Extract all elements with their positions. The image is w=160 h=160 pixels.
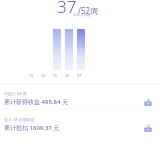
staticText: 34 [37,73,49,78]
staticText: 累计抵扣 1609.37 元 [4,124,60,132]
staticText: 累计获得收益 495.84 元 [4,98,68,106]
staticText: 33 [25,73,37,78]
staticText: 已存入周数 [73,13,91,17]
staticText: 37 [73,73,85,78]
staticText: 37 [57,0,77,18]
staticText: 35 [49,73,61,78]
staticText: 36 [61,73,73,78]
other: Deduction detail [142,122,154,134]
other: Earnings detail [142,96,154,108]
button[interactable]: 存入 18 次领取金 [0,112,160,136]
staticText: /52周 [78,5,99,16]
staticText: 已投入 34 周 [4,91,27,96]
button[interactable]: 已投入 34 周 [0,86,160,110]
staticText: 存入 18 次领取金 [4,117,35,122]
